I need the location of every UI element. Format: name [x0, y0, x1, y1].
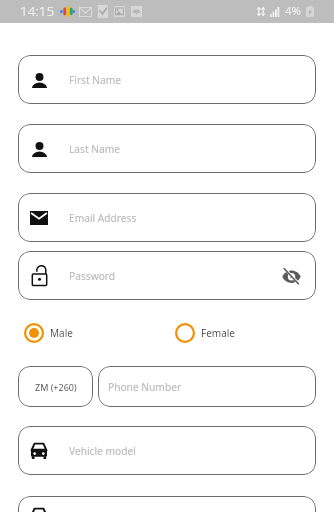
staticText: Vehicle model: [69, 444, 136, 458]
button[interactable]: Last Name: [18, 124, 316, 173]
staticText: Last Name: [69, 142, 120, 156]
button[interactable]: First Name: [18, 55, 316, 104]
staticText: Email Address: [69, 211, 137, 225]
button[interactable]: Email Address: [18, 193, 316, 242]
staticText: Female: [201, 326, 236, 340]
button[interactable]: Female: [175, 323, 236, 343]
staticText: Phone Number: [108, 380, 182, 394]
button[interactable]: Password: [18, 251, 316, 300]
button[interactable]: Phone Number: [98, 366, 316, 407]
staticText: 14:15: [20, 2, 55, 20]
button[interactable]: Male: [24, 323, 73, 343]
staticText: First Name: [69, 73, 122, 87]
staticText: Password: [69, 269, 116, 283]
button[interactable]: Vehicle model: [18, 426, 316, 475]
staticText: ZM (+260): [35, 381, 77, 393]
staticText: 4%: [285, 3, 301, 19]
button[interactable]: [18, 496, 316, 512]
staticText: Male: [50, 326, 73, 340]
button[interactable]: ZM (+260): [18, 366, 93, 407]
button[interactable]: Show password: [279, 264, 303, 288]
